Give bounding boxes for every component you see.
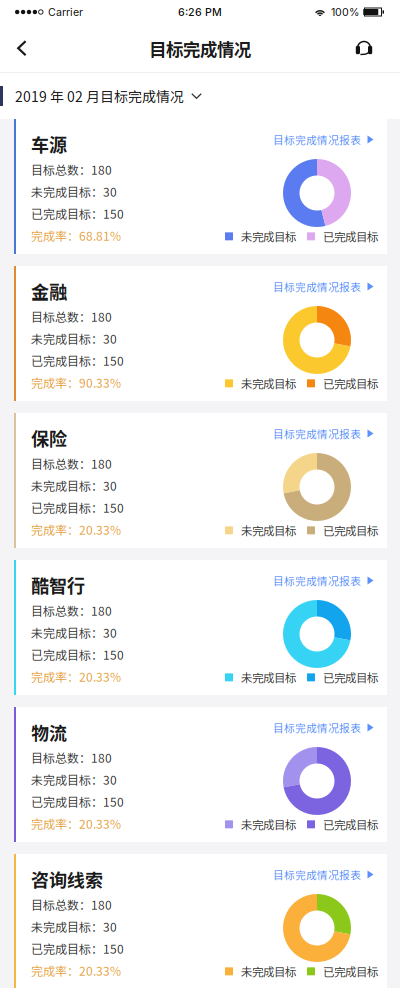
- staticText: 目标总数：180: [31, 602, 112, 619]
- staticText: 未完成目标: [241, 816, 296, 833]
- button[interactable]: 目标完成情况报表: [273, 279, 378, 294]
- staticText: 已完成目标: [323, 669, 378, 686]
- staticText: 完成率：68.81%: [31, 227, 121, 244]
- staticText: 目标完成情况报表: [273, 867, 361, 882]
- staticText: 金融: [31, 278, 67, 304]
- staticText: 完成率：20.33%: [31, 668, 121, 685]
- staticText: 未完成目标：30: [31, 330, 117, 347]
- staticText: Carrier: [48, 5, 83, 18]
- staticText: 目标总数：180: [31, 308, 112, 325]
- staticText: 已完成目标: [323, 963, 378, 980]
- staticText: 目标完成情况报表: [273, 720, 361, 735]
- button[interactable]: 目标完成情况报表: [273, 720, 378, 735]
- button[interactable]: 2019 年 02 月目标完成情况: [15, 86, 202, 106]
- staticText: 完成率：20.33%: [31, 521, 121, 538]
- button[interactable]: 返回: [0, 24, 44, 72]
- staticText: 目标总数：180: [31, 749, 112, 766]
- staticText: 目标总数：180: [31, 455, 112, 472]
- staticText: 未完成目标：30: [31, 183, 117, 200]
- staticText: 已完成目标: [323, 816, 378, 833]
- staticText: 目标完成情况报表: [273, 426, 361, 441]
- staticText: 目标完成情况: [149, 36, 251, 61]
- staticText: 未完成目标: [241, 375, 296, 392]
- staticText: 目标完成情况报表: [273, 573, 361, 588]
- staticText: 未完成目标: [241, 963, 296, 980]
- staticText: 已完成目标: [323, 522, 378, 539]
- staticText: 酷智行: [31, 572, 85, 598]
- button[interactable]: 目标完成情况报表: [273, 867, 378, 882]
- staticText: 目标总数：180: [31, 161, 112, 178]
- button[interactable]: 目标完成情况报表: [273, 426, 378, 441]
- staticText: 咨询线索: [31, 866, 103, 892]
- button[interactable]: 客服: [342, 24, 386, 72]
- staticText: 目标完成情况报表: [273, 279, 361, 294]
- staticText: 未完成目标: [241, 228, 296, 245]
- staticText: 6:26 PM: [178, 5, 222, 18]
- staticText: 未完成目标：30: [31, 918, 117, 935]
- staticText: 目标完成情况报表: [273, 132, 361, 147]
- staticText: 100%: [331, 5, 359, 18]
- staticText: 已完成目标: [323, 228, 378, 245]
- staticText: 已完成目标：150: [31, 646, 124, 663]
- staticText: 已完成目标：150: [31, 499, 124, 516]
- button[interactable]: 目标完成情况报表: [273, 132, 378, 147]
- staticText: 完成率：90.33%: [31, 374, 121, 391]
- staticText: 未完成目标：30: [31, 624, 117, 641]
- staticText: 未完成目标：30: [31, 771, 117, 788]
- staticText: 完成率：20.33%: [31, 962, 121, 979]
- staticText: 未完成目标：30: [31, 477, 117, 494]
- staticText: 目标总数：180: [31, 896, 112, 913]
- staticText: 完成率：20.33%: [31, 815, 121, 832]
- staticText: 已完成目标: [323, 375, 378, 392]
- staticText: 车源: [31, 131, 67, 157]
- staticText: 已完成目标：150: [31, 205, 124, 222]
- staticText: 未完成目标: [241, 522, 296, 539]
- staticText: 未完成目标: [241, 669, 296, 686]
- staticText: 保险: [31, 425, 67, 451]
- button[interactable]: 目标完成情况报表: [273, 573, 378, 588]
- staticText: 物流: [31, 719, 67, 745]
- staticText: 2019 年 02 月目标完成情况: [15, 86, 184, 106]
- staticText: 已完成目标：150: [31, 352, 124, 369]
- staticText: 已完成目标：150: [31, 940, 124, 957]
- staticText: 已完成目标：150: [31, 793, 124, 810]
